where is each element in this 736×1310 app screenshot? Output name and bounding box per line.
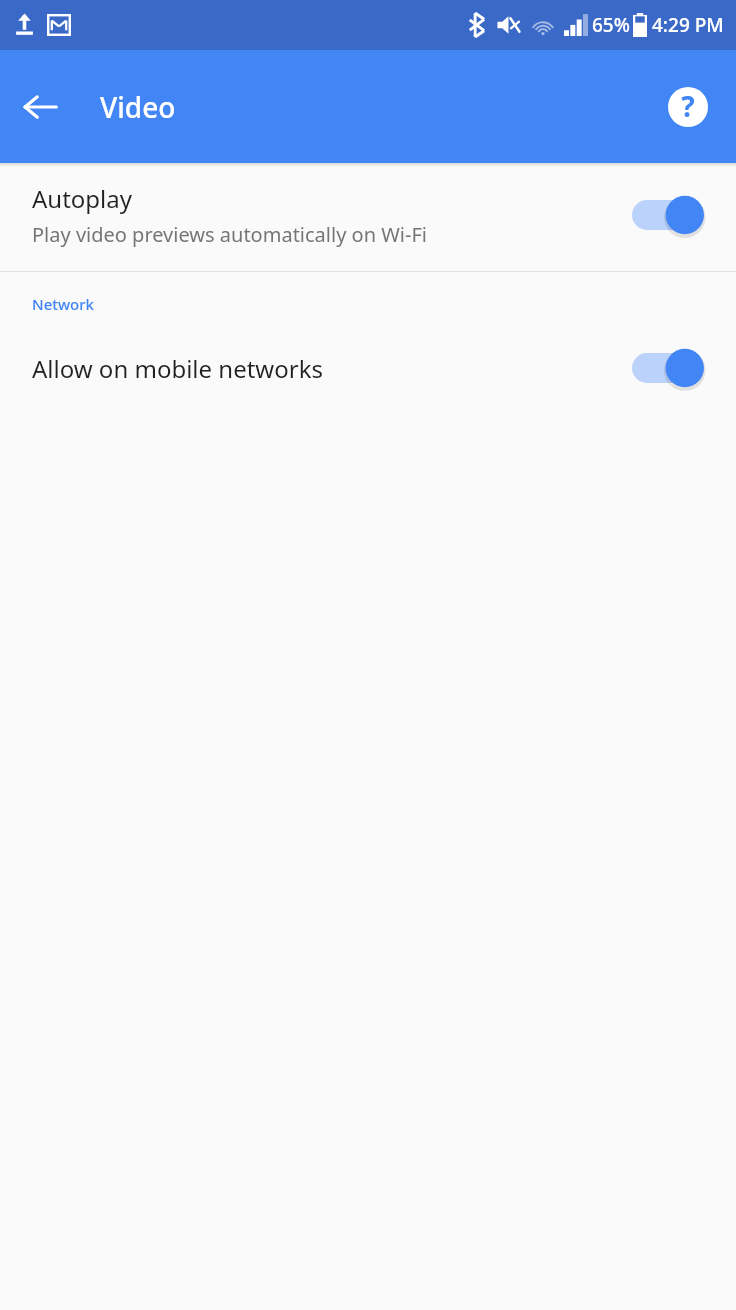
staticText: Autoplay (32, 182, 133, 215)
staticText: 4:29 PM (652, 12, 724, 38)
staticText: Network (32, 294, 94, 314)
staticText: Video (100, 88, 176, 126)
button[interactable]: Autoplay (0, 176, 736, 254)
staticText: Allow on mobile networks (32, 352, 323, 385)
button[interactable]: Allow on mobile networks (0, 338, 736, 398)
button[interactable]: Toggle (626, 344, 710, 392)
staticText: Play video previews automatically on Wi-… (32, 221, 427, 248)
button[interactable]: Toggle (626, 191, 710, 239)
staticText: 65% (592, 12, 630, 38)
button[interactable]: Back (0, 50, 80, 163)
button[interactable]: Help (640, 50, 736, 163)
staticText: ? (681, 87, 695, 125)
